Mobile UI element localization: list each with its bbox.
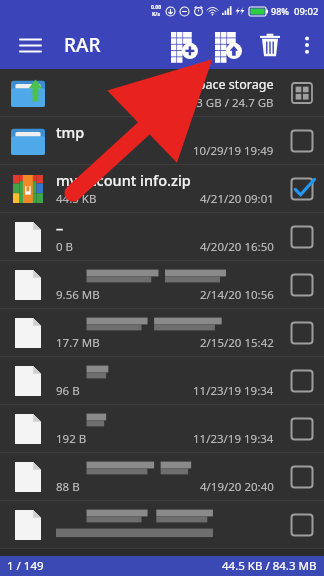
staticText: 4/21/20 09:01 — [200, 191, 274, 207]
staticText: 98% — [271, 5, 289, 17]
staticText: 10/29/19 19:49 — [193, 143, 274, 159]
button[interactable]: Select — [289, 368, 315, 394]
button[interactable]: Add to archive — [162, 23, 206, 67]
button[interactable]: More options — [290, 28, 324, 62]
button[interactable]: Select — [289, 320, 315, 346]
button[interactable]: – — [0, 213, 324, 261]
staticText: 4/20/20 16:50 — [200, 239, 274, 255]
button[interactable]: Switch view — [289, 80, 315, 106]
button[interactable]: Delete — [250, 25, 290, 65]
button[interactable]: Select — [289, 512, 315, 538]
staticText: tmp — [56, 122, 85, 142]
staticText: my account info.zip — [56, 170, 191, 190]
button[interactable]: Free space storage — [0, 69, 324, 117]
button[interactable]: Select — [289, 128, 315, 154]
staticText: 2/14/20 10:56 — [200, 287, 274, 303]
staticText: 2/15/20 15:42 — [200, 335, 274, 351]
button[interactable]: Menu — [10, 25, 50, 65]
staticText: 9.56 MB — [56, 287, 100, 303]
staticText: 0 B — [56, 239, 74, 255]
staticText: 1 / 149 — [7, 558, 44, 574]
staticText: 09:02 — [294, 5, 319, 18]
staticText: 44.5 KB — [56, 191, 97, 207]
button[interactable]: Select — [289, 224, 315, 250]
button[interactable]: 192 B — [0, 405, 324, 453]
staticText: 88 B — [56, 479, 80, 495]
staticText: 192 B — [56, 431, 87, 447]
staticText: K/s — [152, 11, 160, 18]
button[interactable]: Select — [289, 416, 315, 442]
button[interactable]: Select — [289, 176, 315, 202]
staticText: RAR — [64, 32, 101, 58]
staticText: 22.3 GB / 24.7 GB — [180, 95, 274, 111]
staticText: 96 B — [56, 383, 80, 399]
staticText: 4/19/20 20:40 — [200, 479, 274, 495]
staticText: – — [56, 218, 64, 238]
button[interactable]: 9.56 MB — [0, 261, 324, 309]
button[interactable]: 17.7 MB — [0, 309, 324, 357]
button[interactable]: 96 B — [0, 357, 324, 405]
button[interactable]: Extract — [206, 23, 250, 67]
staticText: 44.5 KB / 84.3 MB — [222, 558, 317, 574]
button[interactable]: Select — [289, 272, 315, 298]
button[interactable]: tmp — [0, 117, 324, 165]
staticText: Free space storage — [163, 76, 274, 93]
button[interactable]: 88 B — [0, 453, 324, 501]
staticText: 11/23/19 19:34 — [193, 383, 274, 399]
staticText: 11/23/19 19:34 — [193, 431, 274, 447]
staticText: 0.00 — [151, 4, 161, 11]
button[interactable]: Select — [289, 464, 315, 490]
button[interactable]: my account info.zip — [0, 165, 324, 213]
staticText: 17.7 MB — [56, 335, 100, 351]
button[interactable]: Select — [0, 501, 324, 549]
